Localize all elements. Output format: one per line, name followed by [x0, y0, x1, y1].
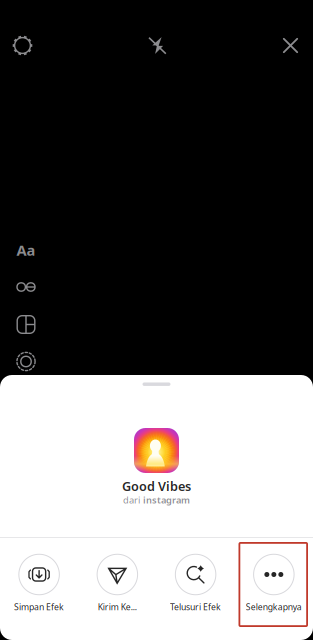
button[interactable]: Kirim Ke...: [78, 542, 156, 627]
button[interactable]: Effects: [13, 348, 39, 374]
button[interactable]: Layout: [13, 311, 39, 337]
button[interactable]: Simpan Efek: [0, 542, 78, 627]
button[interactable]: Camera settings: [9, 32, 35, 58]
staticText: dari: [123, 494, 140, 506]
staticText: Telusuri Efek: [170, 601, 221, 613]
staticText: Good Vibes: [122, 477, 191, 495]
button[interactable]: Close: [278, 33, 302, 57]
button[interactable]: Telusuri Efek: [156, 542, 235, 627]
button[interactable]: Boomerang: [13, 274, 39, 300]
button[interactable]: Text: [13, 237, 39, 263]
staticText: Selengkapnya: [246, 601, 302, 613]
button[interactable]: Selengkapnya: [235, 542, 313, 627]
staticText: Aa: [16, 240, 35, 260]
staticText: Kirim Ke...: [98, 601, 137, 613]
staticText: instagram: [143, 494, 190, 506]
button[interactable]: Flash off: [146, 34, 168, 56]
staticText: Simpan Efek: [14, 601, 64, 613]
